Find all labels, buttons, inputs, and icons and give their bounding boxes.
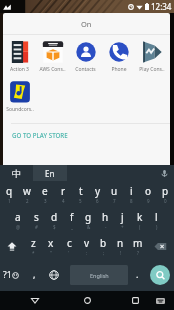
button[interactable]: a (9, 207, 27, 233)
button[interactable]: ?1 (0, 259, 22, 291)
button[interactable]: h (97, 207, 114, 233)
button[interactable]: t (72, 181, 89, 207)
staticText: + (121, 224, 124, 230)
staticText: x (48, 236, 54, 250)
staticText: 0 (164, 198, 167, 204)
staticText: j (121, 210, 124, 224)
button[interactable]: Soundcors.. (3, 81, 36, 113)
staticText: 3 (44, 198, 47, 204)
staticText: # (35, 224, 38, 230)
staticText: b (100, 236, 107, 250)
button[interactable]: 中 (0, 165, 33, 181)
staticText: a (15, 210, 21, 224)
button[interactable]: g (80, 207, 97, 233)
button[interactable]: Search (150, 265, 170, 285)
button[interactable]: Recents (122, 291, 148, 310)
button[interactable]: i (123, 181, 140, 207)
staticText: AWS Cons.. (39, 66, 66, 73)
staticText: * (32, 250, 35, 256)
staticText: " (50, 250, 52, 256)
button[interactable]: Switch keyboard (148, 291, 172, 310)
staticText: 中 (12, 168, 21, 179)
button[interactable]: m (129, 233, 146, 259)
staticText: Soundcors.. (6, 106, 34, 113)
button[interactable]: x (42, 233, 60, 259)
staticText: , (33, 268, 36, 280)
staticText: Contacts (75, 66, 96, 73)
button[interactable]: u (106, 181, 123, 207)
button[interactable]: l (148, 207, 165, 233)
staticText: ?1 (3, 269, 12, 281)
button[interactable]: . (128, 259, 146, 291)
staticText: En (45, 168, 55, 179)
button[interactable]: n (112, 233, 129, 259)
staticText: 1 (8, 198, 11, 204)
staticText: n (117, 236, 124, 250)
button[interactable]: c (60, 233, 78, 259)
staticText: r (61, 184, 66, 198)
button[interactable]: f (63, 207, 80, 233)
button[interactable]: q (0, 181, 18, 207)
button[interactable]: b (95, 233, 112, 259)
button[interactable]: j (114, 207, 131, 233)
staticText: l (155, 210, 158, 224)
staticText: 6 (96, 198, 99, 204)
button[interactable]: z (24, 233, 42, 259)
staticText: d (51, 210, 58, 224)
staticText: & (87, 224, 91, 230)
staticText: On (81, 19, 92, 29)
staticText: English (90, 272, 109, 279)
button[interactable]: Action 3 (3, 41, 36, 73)
button[interactable]: w (18, 181, 36, 207)
staticText: - (105, 224, 107, 230)
staticText: 9 (147, 198, 150, 204)
button[interactable]: d (45, 207, 63, 233)
staticText: z (31, 236, 36, 250)
button[interactable]: Contacts (69, 41, 102, 73)
button[interactable]: Back (0, 291, 70, 310)
button[interactable]: AWS Cons.. (36, 41, 69, 73)
button[interactable]: r (54, 181, 72, 207)
staticText: ! (120, 250, 122, 256)
button[interactable]: k (131, 207, 148, 233)
staticText: Phone (111, 66, 127, 73)
staticText: y (95, 184, 101, 198)
staticText: Play Cons.. (139, 66, 165, 73)
staticText: $ (53, 224, 56, 230)
staticText: q (6, 184, 13, 198)
staticText: c (67, 236, 72, 250)
button[interactable]: p (157, 181, 174, 207)
staticText: e (42, 184, 48, 198)
button[interactable]: s (27, 207, 45, 233)
button[interactable]: e (36, 181, 54, 207)
button[interactable]: Phone (102, 41, 135, 73)
staticText: 4 (62, 198, 65, 204)
staticText: : (86, 250, 88, 256)
button[interactable]: y (89, 181, 106, 207)
staticText: i (130, 184, 133, 198)
button[interactable]: En (33, 165, 67, 181)
button[interactable]: , (22, 259, 46, 291)
button[interactable]: GO TO PLAY STORE (3, 124, 170, 146)
staticText: ' (68, 250, 70, 256)
staticText: w (23, 184, 31, 198)
staticText: h (102, 210, 109, 224)
button[interactable]: Play Cons.. (135, 41, 168, 73)
staticText: o (145, 184, 152, 198)
button[interactable]: English (70, 265, 128, 285)
button[interactable]: o (140, 181, 157, 207)
staticText: . (136, 268, 139, 280)
button[interactable]: Voice input (154, 165, 174, 181)
staticText: _ (71, 224, 73, 230)
staticText: @ (16, 224, 21, 230)
staticText: g (85, 210, 92, 224)
button[interactable]: Backspace (146, 233, 174, 259)
button[interactable]: v (78, 233, 95, 259)
button[interactable]: Change language (46, 259, 62, 291)
button[interactable]: Shift (0, 233, 24, 259)
staticText: ; (103, 250, 105, 256)
button[interactable]: Home (70, 291, 104, 310)
staticText: v (84, 236, 90, 250)
staticText: u (111, 184, 118, 198)
staticText: m (133, 236, 143, 250)
